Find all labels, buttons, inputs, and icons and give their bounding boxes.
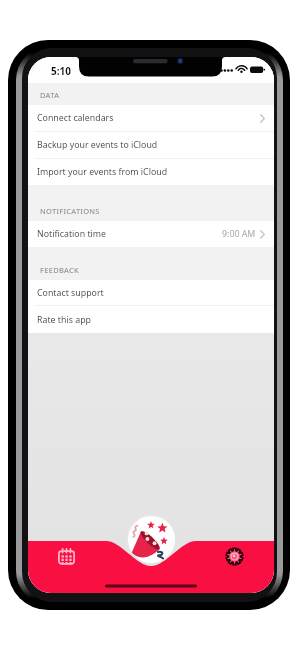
staticText: Contact support (37, 287, 104, 299)
staticText: Backup your events to iCloud (37, 139, 158, 151)
button[interactable]: Backup your events to iCloud (28, 132, 274, 158)
staticText: 9:00 AM (222, 228, 256, 240)
button[interactable]: Rate this app (28, 306, 274, 333)
staticText: Notification time (37, 228, 107, 240)
staticText: FEEDBACK (40, 265, 80, 275)
staticText: Rate this app (37, 314, 91, 326)
button[interactable]: Settings (222, 544, 246, 568)
button[interactable]: Connect calendars (28, 105, 274, 131)
button[interactable]: Calendar (54, 544, 78, 568)
button[interactable]: Notification time (28, 221, 274, 247)
button[interactable]: Create event (128, 516, 175, 563)
staticText: Import your events from iCloud (37, 166, 168, 178)
staticText: Connect calendars (37, 112, 114, 124)
staticText: DATA (40, 90, 60, 100)
staticText: 5:10 (51, 64, 71, 78)
button[interactable]: Import your events from iCloud (28, 159, 274, 185)
button[interactable]: Contact support (28, 280, 274, 305)
staticText: NOTIFICATIONS (40, 206, 100, 216)
